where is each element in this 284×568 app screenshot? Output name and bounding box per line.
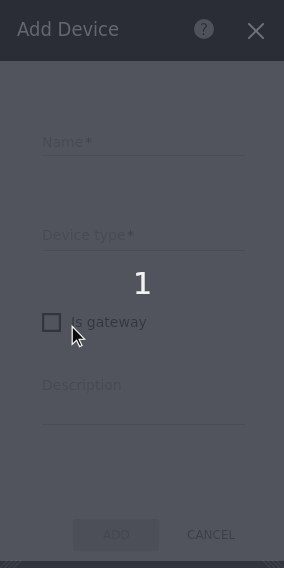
staticText: * — [85, 134, 92, 150]
staticText: Description — [42, 377, 122, 393]
staticText: Is gateway — [71, 314, 147, 330]
staticText: CANCEL — [187, 528, 236, 542]
button[interactable]: CANCEL — [174, 519, 248, 551]
staticText: Device type — [42, 227, 126, 243]
button[interactable]: Is gateway — [42, 309, 147, 335]
staticText: * — [127, 227, 134, 243]
button[interactable]: Close — [238, 13, 273, 48]
staticText: Name — [42, 134, 84, 150]
button[interactable]: Help — [186, 11, 222, 47]
staticText: Add Device — [17, 17, 120, 40]
staticText: ADD — [103, 528, 130, 542]
staticText: 1 — [133, 266, 153, 301]
staticText: ? — [200, 21, 208, 38]
